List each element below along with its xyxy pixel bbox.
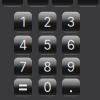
staticText: 9 <box>67 59 75 75</box>
button[interactable]: Function key <box>27 0 48 6</box>
button[interactable]: 9 <box>62 58 80 77</box>
button[interactable]: 0 <box>38 79 56 96</box>
button[interactable]: Decimal point <box>62 79 80 96</box>
staticText: 1 <box>20 14 25 30</box>
staticText: 8 <box>43 59 51 75</box>
staticText: 7 <box>19 59 26 75</box>
button[interactable]: 2 <box>38 12 56 32</box>
button[interactable]: Function key <box>2 0 23 6</box>
staticText: 4 <box>19 37 27 53</box>
button[interactable]: 7 <box>14 58 32 77</box>
button[interactable]: 1 <box>14 12 32 32</box>
button[interactable]: Function key <box>52 0 73 6</box>
staticText: 2 <box>43 14 51 30</box>
staticText: 6 <box>67 37 75 53</box>
button[interactable]: 6 <box>62 36 80 55</box>
button[interactable]: 8 <box>38 58 56 77</box>
staticText: 0 <box>43 80 51 95</box>
button[interactable]: Function key <box>77 0 98 6</box>
button[interactable]: 3 <box>62 12 80 32</box>
button[interactable]: Equals <box>14 79 32 96</box>
button[interactable]: 5 <box>38 36 56 55</box>
staticText: 3 <box>67 14 75 30</box>
staticText: 5 <box>43 37 51 53</box>
button[interactable]: 4 <box>14 36 32 55</box>
